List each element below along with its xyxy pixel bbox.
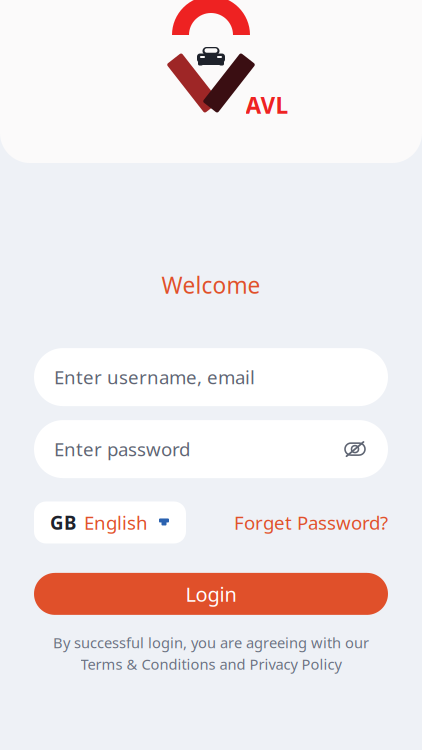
staticText: English bbox=[84, 510, 148, 535]
button[interactable]: Login bbox=[34, 573, 388, 615]
staticText: Login bbox=[185, 581, 236, 607]
staticText: GB bbox=[50, 510, 76, 535]
staticText: Terms & Conditions and Privacy Policy bbox=[80, 654, 341, 674]
staticText: By successful login, you are agreeing wi… bbox=[53, 633, 369, 652]
staticText: Enter username, email bbox=[54, 365, 255, 389]
button[interactable]: GB bbox=[34, 501, 186, 543]
staticText: Welcome bbox=[161, 270, 260, 300]
button[interactable]: Show password bbox=[334, 439, 368, 459]
button[interactable]: Terms & Conditions and Privacy Policy bbox=[80, 654, 341, 674]
staticText: Forget Password? bbox=[234, 510, 388, 535]
staticText: Enter password bbox=[54, 437, 190, 461]
button[interactable]: Forget Password? bbox=[234, 500, 388, 545]
staticText: AVL bbox=[245, 90, 288, 120]
